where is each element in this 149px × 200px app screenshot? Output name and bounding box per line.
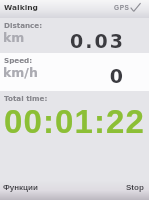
staticText: Stop <box>126 183 144 192</box>
button[interactable]: Total time: <box>0 91 149 181</box>
staticText: Speed: <box>4 56 33 64</box>
staticText: GPS <box>114 4 130 11</box>
button[interactable]: Distance: <box>0 18 149 53</box>
button[interactable]: Stop <box>126 183 144 192</box>
staticText: 0.03 <box>0 30 125 52</box>
staticText: km <box>3 30 25 45</box>
button[interactable]: Функции <box>3 183 38 192</box>
other: GPS fix acquired <box>130 3 141 12</box>
staticText: Walking <box>4 3 38 12</box>
staticText: Функции <box>3 183 38 192</box>
staticText: Total time: <box>4 94 48 102</box>
staticText: 0 <box>0 65 125 87</box>
staticText: 00:01:22 <box>0 103 149 140</box>
staticText: Distance: <box>4 21 43 29</box>
button[interactable]: Speed: <box>0 53 149 91</box>
staticText: km/h <box>3 65 38 80</box>
